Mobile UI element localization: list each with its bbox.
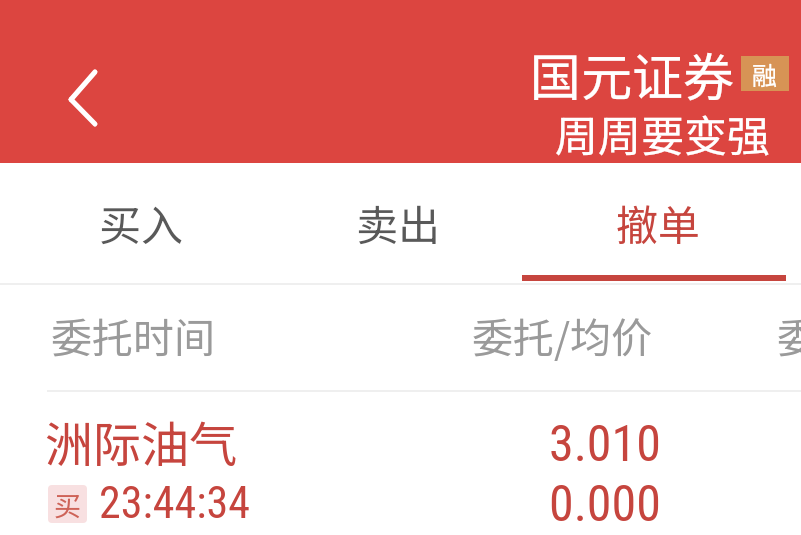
staticText: 委托/成交 (777, 305, 801, 364)
button[interactable]: Back (47, 60, 132, 140)
staticText: 卖出 (265, 192, 531, 253)
staticText: 23:44:34 (99, 477, 250, 529)
staticText: 3.010 (549, 415, 661, 474)
button[interactable]: 卖出 (265, 163, 531, 281)
staticText: 买 (54, 485, 81, 523)
staticText: 0.000 (549, 475, 661, 534)
staticText: 融 (752, 56, 778, 91)
button[interactable]: 洲际油气 (0, 391, 801, 535)
button[interactable]: 买入 (8, 163, 274, 281)
staticText: 撤单 (526, 192, 790, 253)
staticText: 买入 (8, 192, 274, 253)
button[interactable]: 撤单 (526, 163, 790, 281)
staticText: 委托时间 (51, 305, 271, 364)
staticText: 委托/均价 (472, 305, 692, 364)
staticText: 洲际油气 (45, 406, 238, 476)
staticText: 周周要变强 (555, 102, 770, 164)
staticText: 国元证券 (530, 37, 735, 111)
